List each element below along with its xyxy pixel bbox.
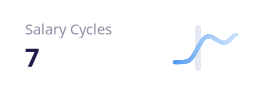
staticText: 7	[25, 40, 39, 74]
staticText: Salary Cycles	[25, 19, 112, 38]
